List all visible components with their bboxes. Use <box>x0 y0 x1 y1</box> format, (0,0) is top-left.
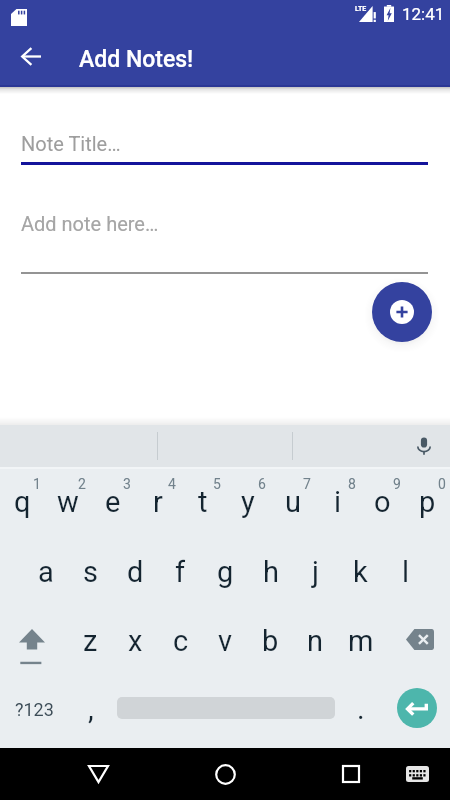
button[interactable]: 2 <box>45 467 90 535</box>
button[interactable]: 3 <box>90 467 135 535</box>
staticText: s <box>83 555 98 589</box>
button[interactable]: z <box>68 603 113 671</box>
button[interactable]: Shift <box>0 603 68 671</box>
button[interactable]: c <box>158 603 203 671</box>
button[interactable]: k <box>338 535 383 603</box>
staticText: z <box>83 624 98 658</box>
staticText: 8 <box>348 476 356 492</box>
staticText: 0 <box>438 476 446 492</box>
staticText: j <box>312 555 319 589</box>
button[interactable]: m <box>338 603 383 671</box>
button[interactable]: v <box>203 603 248 671</box>
staticText: y <box>241 485 255 519</box>
button[interactable]: 5 <box>180 467 225 535</box>
button[interactable]: Delete <box>383 603 450 671</box>
staticText: g <box>217 555 234 589</box>
staticText: LTE <box>355 5 367 13</box>
staticText: a <box>38 555 54 589</box>
staticText: n <box>307 624 324 658</box>
button[interactable]: 6 <box>225 467 270 535</box>
button[interactable]: l <box>383 535 428 603</box>
button[interactable]: Switch keyboard <box>392 748 443 800</box>
button[interactable]: Back <box>68 748 128 800</box>
button[interactable]: d <box>113 535 158 603</box>
staticText: h <box>263 555 279 589</box>
button[interactable]: b <box>248 603 293 671</box>
button[interactable]: Enter <box>383 671 450 748</box>
staticText: Add Notes! <box>79 46 194 73</box>
staticText: Add note here… <box>21 212 159 235</box>
staticText: 4 <box>168 476 176 492</box>
staticText: l <box>402 555 410 589</box>
staticText: b <box>262 624 279 658</box>
staticText: ?123 <box>15 699 54 720</box>
staticText: f <box>175 555 186 589</box>
staticText: x <box>128 624 143 658</box>
staticText: 7 <box>303 476 311 492</box>
button[interactable]: 4 <box>135 467 180 535</box>
staticText: o <box>374 485 391 519</box>
staticText: m <box>348 624 374 658</box>
staticText: 6 <box>258 476 266 492</box>
button[interactable]: 1 <box>0 467 45 535</box>
staticText: 3 <box>123 476 131 492</box>
staticText: e <box>105 485 121 519</box>
staticText: p <box>419 485 436 519</box>
button[interactable]: Voice input <box>406 428 442 464</box>
staticText: k <box>353 555 368 589</box>
button[interactable]: g <box>203 535 248 603</box>
staticText: w <box>57 485 79 519</box>
button[interactable]: s <box>68 535 113 603</box>
staticText: 1 <box>33 476 41 492</box>
staticText: 9 <box>393 476 401 492</box>
button[interactable]: 7 <box>270 467 315 535</box>
staticText: , <box>88 692 94 726</box>
button[interactable]: 0 <box>405 467 450 535</box>
button[interactable]: x <box>113 603 158 671</box>
button[interactable]: h <box>248 535 293 603</box>
staticText: c <box>173 624 189 658</box>
staticText: d <box>127 555 144 589</box>
staticText: 2 <box>78 476 86 492</box>
button[interactable]: a <box>23 535 68 603</box>
staticText: Note Title… <box>21 132 121 155</box>
staticText: v <box>218 624 233 658</box>
staticText: q <box>14 485 31 519</box>
button[interactable]: j <box>293 535 338 603</box>
button[interactable]: n <box>293 603 338 671</box>
staticText: t <box>198 485 208 519</box>
button[interactable]: 8 <box>315 467 360 535</box>
staticText: . <box>357 692 365 726</box>
button[interactable]: Navigate up <box>7 32 55 80</box>
staticText: 5 <box>213 476 221 492</box>
button[interactable]: Space <box>113 671 338 748</box>
button[interactable]: Recent apps <box>321 748 381 800</box>
button[interactable]: ?123 <box>0 671 68 748</box>
staticText: u <box>285 485 301 519</box>
staticText: i <box>334 485 342 519</box>
button[interactable]: Save note <box>372 282 432 342</box>
button[interactable]: f <box>158 535 203 603</box>
button[interactable]: . <box>338 671 383 748</box>
staticText: r <box>153 485 163 519</box>
staticText: 12:41 <box>402 4 445 24</box>
button[interactable]: , <box>68 671 113 748</box>
button[interactable]: 9 <box>360 467 405 535</box>
button[interactable]: Home <box>195 748 255 800</box>
